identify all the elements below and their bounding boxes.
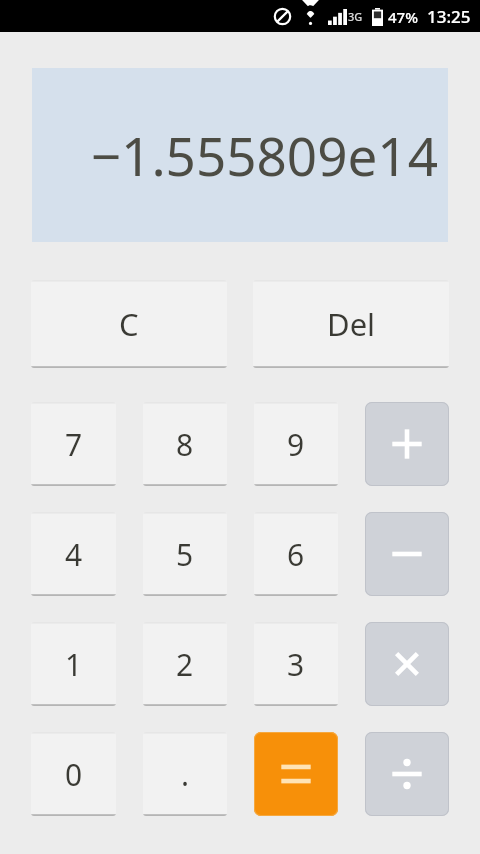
button[interactable]: Divide [365,732,449,816]
button[interactable]: Equals [254,732,338,816]
button[interactable]: 4 [31,512,116,596]
button[interactable]: Multiply [365,622,449,706]
button[interactable]: 7 [31,402,116,486]
button[interactable]: 8 [143,402,227,486]
button[interactable]: . [143,732,227,816]
button[interactable]: 0 [31,732,116,816]
staticText: 2 [176,644,194,685]
staticText: . [181,754,190,795]
button[interactable]: Plus [365,402,449,486]
staticText: 8 [176,424,194,465]
button[interactable]: Del [253,280,449,368]
staticText: 7 [65,424,83,465]
button[interactable]: 2 [143,622,227,706]
staticText: 47% [388,7,418,27]
staticText: 6 [287,534,305,575]
button[interactable]: 6 [254,512,338,596]
staticText: 5 [176,534,194,575]
staticText: 3 [287,644,305,685]
button[interactable]: Minus [365,512,449,596]
staticText: 0 [65,754,83,795]
staticText: 3G [348,9,363,24]
staticText: Del [327,303,376,345]
staticText: −1.555809e14 [90,119,438,191]
staticText: C [119,303,139,345]
button[interactable]: C [31,280,227,368]
staticText: 9 [287,424,305,465]
button[interactable]: 3 [254,622,338,706]
staticText: 4 [65,534,83,575]
staticText: 13:25 [427,5,471,28]
button[interactable]: 9 [254,402,338,486]
button[interactable]: 1 [31,622,116,706]
button[interactable]: 5 [143,512,227,596]
staticText: 1 [65,644,83,685]
